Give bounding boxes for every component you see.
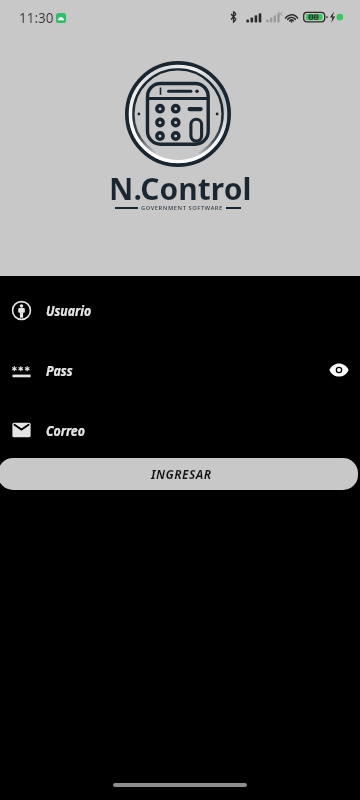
staticText: Pass	[46, 360, 73, 380]
staticText: INGRESAR	[151, 466, 212, 482]
staticText: 11:30	[19, 9, 54, 27]
button[interactable]: Correo	[0, 400, 360, 460]
button[interactable]: Pass	[0, 340, 360, 400]
button[interactable]: Usuario	[0, 280, 360, 340]
button[interactable]: Show password	[323, 354, 355, 386]
staticText: N.Control	[109, 168, 252, 209]
button[interactable]: INGRESAR	[0, 458, 358, 490]
staticText: Usuario	[46, 300, 92, 320]
staticText: Correo	[46, 420, 85, 440]
staticText: GOVERNMENT SOFTWARE	[141, 204, 223, 212]
